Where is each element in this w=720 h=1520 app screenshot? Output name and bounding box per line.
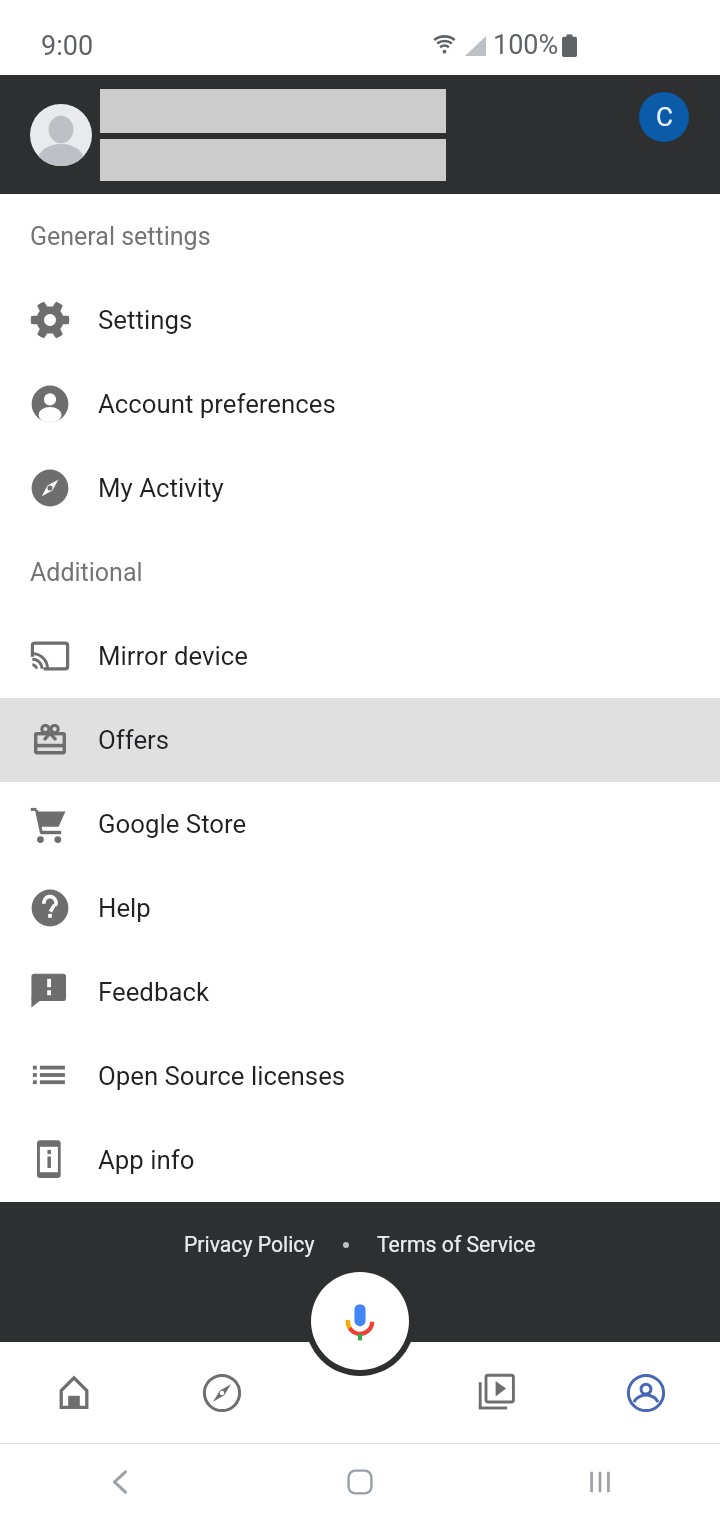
staticText: General settings — [30, 222, 211, 251]
staticText: My Activity — [98, 473, 224, 503]
button[interactable]: C — [639, 92, 689, 142]
staticText: Settings — [98, 305, 193, 335]
staticText: Offers — [98, 725, 170, 755]
staticText: 100% — [493, 29, 559, 61]
button[interactable]: Account preferences — [0, 362, 720, 446]
button[interactable]: Settings — [0, 278, 720, 362]
staticText: Account preferences — [98, 389, 336, 419]
staticText: App info — [98, 1145, 195, 1175]
button[interactable]: Help — [0, 866, 720, 950]
button[interactable]: Google Store — [0, 782, 720, 866]
button[interactable]: My Activity — [0, 446, 720, 530]
button[interactable]: Account — [572, 1342, 720, 1443]
staticText: Mirror device — [98, 641, 248, 671]
staticText: Google Store — [98, 809, 247, 839]
button[interactable]: Voice search — [311, 1272, 409, 1370]
button[interactable]: Terms of Service — [377, 1232, 536, 1257]
button[interactable]: Privacy Policy — [184, 1232, 315, 1257]
staticText: Additional — [30, 558, 143, 587]
button[interactable]: Mirror device — [0, 614, 720, 698]
button[interactable]: Home — [0, 1342, 148, 1443]
button[interactable]: Offers — [0, 698, 720, 782]
button[interactable]: App info — [0, 1118, 720, 1202]
staticText: Open Source licenses — [98, 1061, 346, 1091]
button[interactable]: Feedback — [0, 950, 720, 1034]
staticText: Feedback — [98, 977, 209, 1007]
staticText: C — [656, 102, 673, 132]
button[interactable]: Library — [424, 1342, 572, 1443]
staticText: Help — [98, 893, 151, 923]
button[interactable]: Explore — [148, 1342, 296, 1443]
button[interactable]: Open Source licenses — [0, 1034, 720, 1118]
staticText: 9:00 — [41, 30, 94, 62]
